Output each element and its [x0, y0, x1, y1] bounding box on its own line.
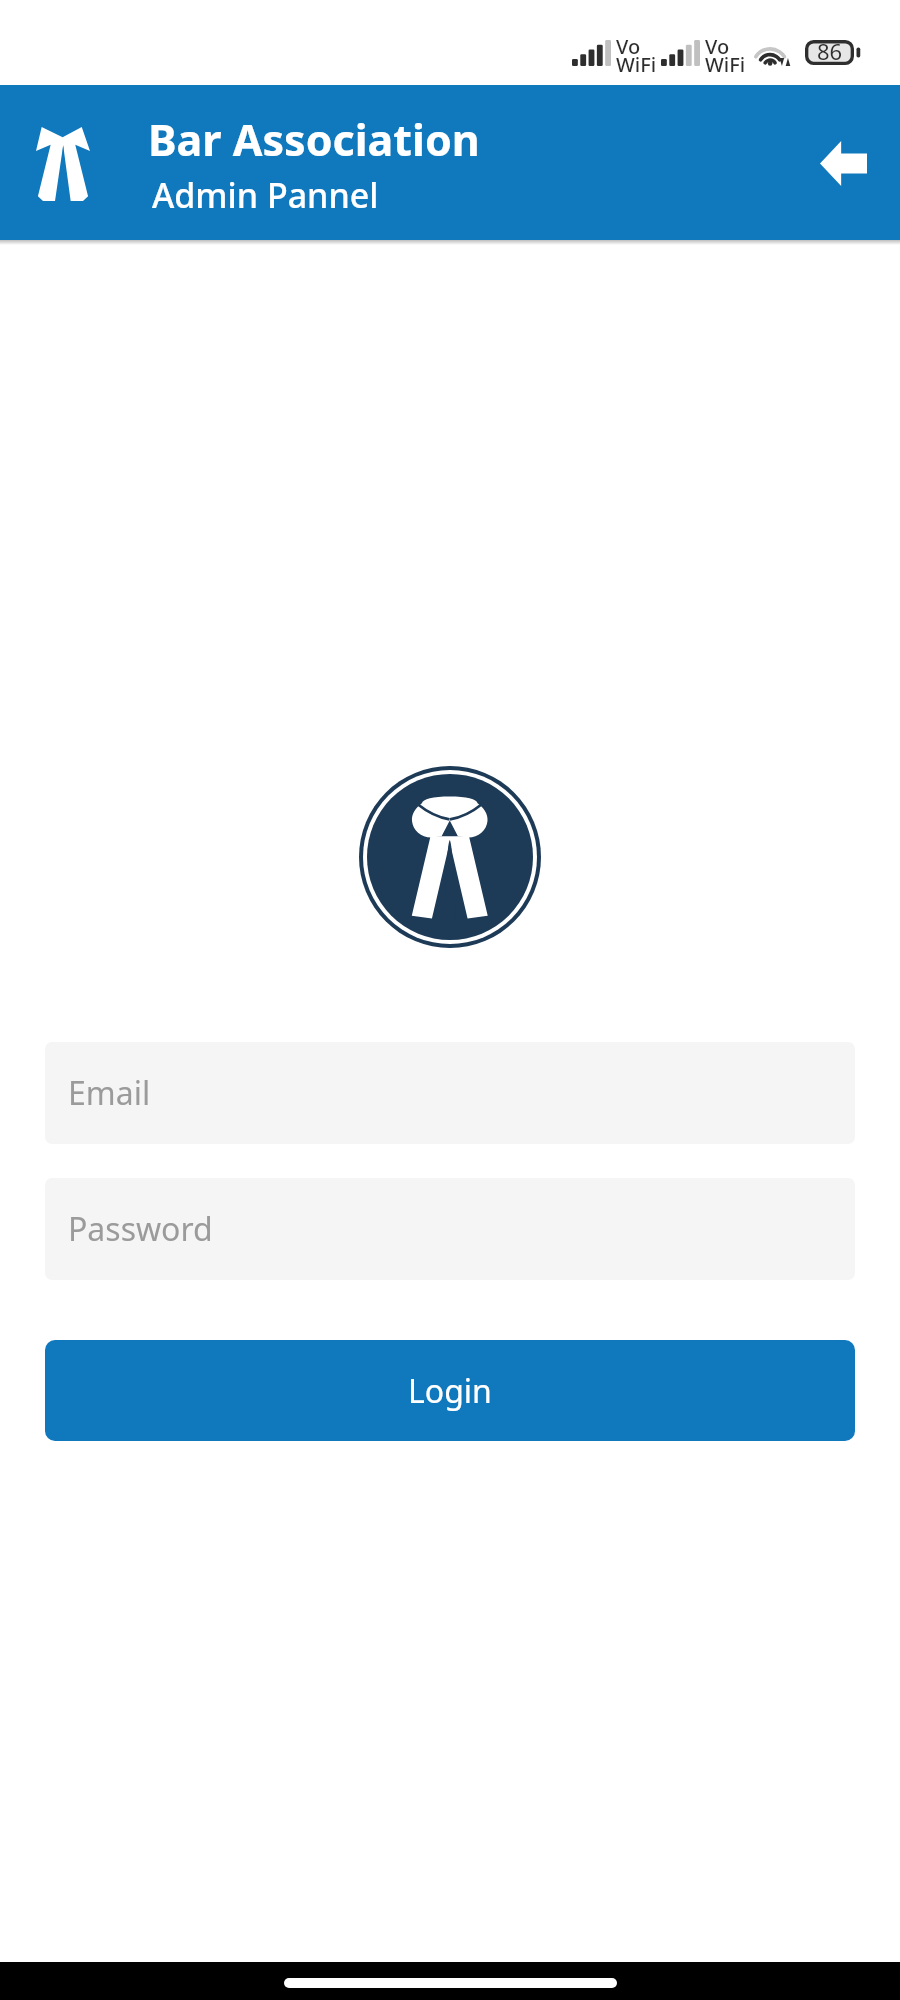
staticText: Admin Pannel [152, 172, 379, 218]
staticText: Login [408, 1369, 492, 1413]
button[interactable]: Back [807, 127, 879, 199]
staticText: Email [68, 1071, 151, 1115]
staticText: Vo [705, 33, 730, 60]
staticText: 86 [817, 36, 843, 66]
button[interactable]: Login [45, 1340, 855, 1441]
staticText: Password [68, 1207, 213, 1251]
staticText: Bar Association [148, 110, 480, 169]
staticText: WiFi [705, 51, 746, 78]
staticText: WiFi [616, 51, 657, 78]
button[interactable]: Email [45, 1042, 855, 1144]
button[interactable]: Password [45, 1178, 855, 1280]
staticText: Vo [616, 33, 641, 60]
